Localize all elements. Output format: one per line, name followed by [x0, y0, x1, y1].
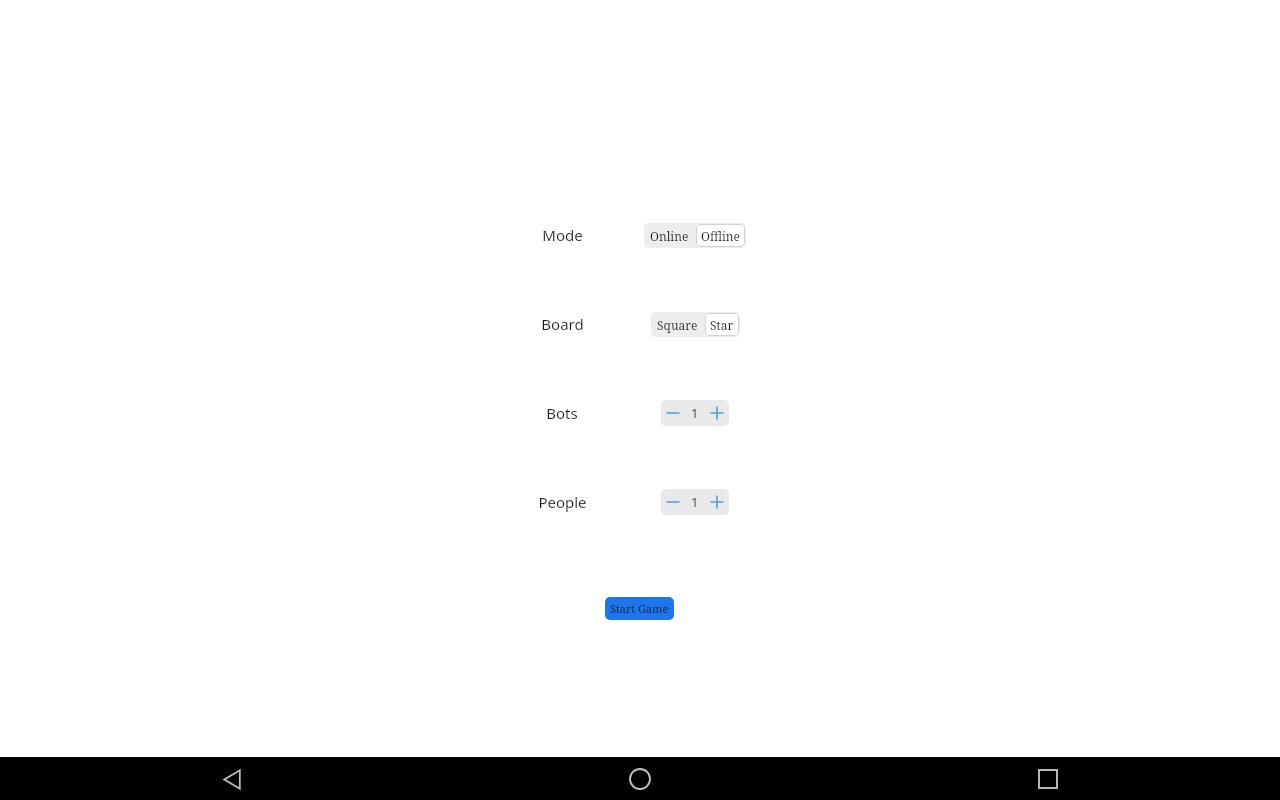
button[interactable]: Recent apps — [1028, 759, 1068, 799]
button[interactable]: Home — [620, 759, 660, 799]
staticText: Offline — [701, 228, 740, 244]
staticText: Start Game — [610, 601, 669, 616]
staticText: Square — [657, 317, 698, 333]
staticText: Online — [650, 228, 689, 244]
button[interactable]: Decrease People — [661, 489, 685, 515]
button[interactable]: Online — [650, 224, 689, 247]
button[interactable]: Increase People — [705, 489, 729, 515]
button[interactable]: Offline — [701, 224, 740, 247]
button[interactable]: Start Game — [605, 597, 674, 620]
staticText: Star — [710, 317, 734, 333]
staticText: Board — [541, 314, 584, 334]
button[interactable]: Square — [657, 313, 698, 336]
staticText: 1 — [691, 493, 699, 511]
staticText: Bots — [546, 403, 578, 423]
button[interactable]: Decrease Bots — [661, 400, 685, 426]
staticText: 1 — [691, 404, 699, 422]
button[interactable]: Increase Bots — [705, 400, 729, 426]
staticText: Mode — [542, 225, 583, 245]
button[interactable]: Back — [213, 759, 253, 799]
staticText: People — [538, 492, 587, 512]
button[interactable]: Star — [710, 313, 734, 336]
